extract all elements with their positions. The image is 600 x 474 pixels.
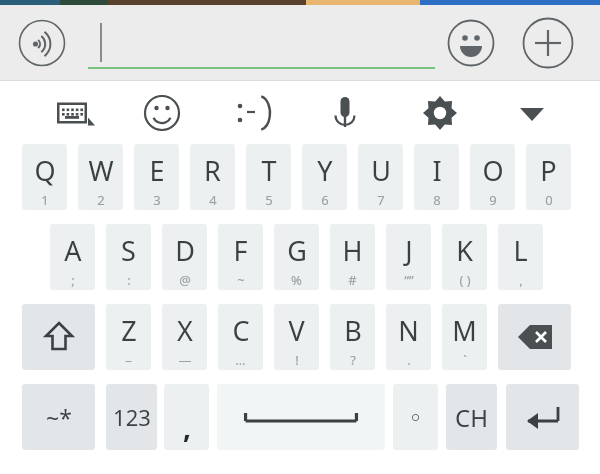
button[interactable]: Voice input xyxy=(18,19,66,67)
staticText: 7 xyxy=(377,191,385,209)
staticText: CH xyxy=(455,401,488,434)
button[interactable]: G xyxy=(274,224,319,290)
button[interactable]: X xyxy=(162,304,207,370)
staticText: E xyxy=(149,152,165,189)
staticText: C xyxy=(232,312,250,349)
staticText: Q xyxy=(34,152,56,189)
staticText: U xyxy=(371,152,391,189)
button[interactable]: I xyxy=(414,144,459,210)
staticText: ◦ xyxy=(409,406,422,429)
staticText: O xyxy=(482,152,504,189)
staticText: F xyxy=(233,232,248,269)
staticText: ; xyxy=(71,271,75,289)
staticText: 4 xyxy=(209,191,217,209)
button[interactable]: Keyboard layout xyxy=(52,93,92,133)
button[interactable]: N xyxy=(386,304,431,370)
staticText: W xyxy=(88,152,114,189)
button[interactable]: S xyxy=(106,224,151,290)
button[interactable]: Shift xyxy=(22,304,95,370)
staticText: ! xyxy=(295,351,299,369)
button[interactable]: CH xyxy=(446,384,497,450)
staticText: , xyxy=(183,408,191,446)
staticText: I xyxy=(432,152,442,189)
button[interactable]: Y xyxy=(302,144,347,210)
button[interactable]: Settings xyxy=(420,93,460,133)
staticText: @ xyxy=(179,271,191,289)
staticText: ? xyxy=(350,351,356,369)
staticText: ~ xyxy=(237,271,245,289)
staticText: B xyxy=(344,312,362,349)
staticText: % xyxy=(291,271,302,289)
button[interactable]: M xyxy=(442,304,487,370)
staticText: R xyxy=(204,152,221,189)
staticText: L xyxy=(513,232,528,269)
staticText: S xyxy=(121,232,136,269)
staticText: X xyxy=(177,312,193,349)
staticText: , xyxy=(519,271,523,289)
button[interactable]: , xyxy=(164,384,209,450)
staticText: G xyxy=(287,232,307,269)
staticText: P xyxy=(540,152,557,189)
staticText: H xyxy=(342,232,363,269)
button[interactable]: Z xyxy=(106,304,151,370)
button[interactable]: P xyxy=(526,144,571,210)
button[interactable]: V xyxy=(274,304,319,370)
staticText: 123 xyxy=(113,402,151,432)
button[interactable]: B xyxy=(330,304,375,370)
button[interactable]: ~* xyxy=(22,384,95,450)
staticText: 0 xyxy=(545,191,553,209)
button[interactable]: Enter xyxy=(506,384,579,450)
button[interactable]: H xyxy=(330,224,375,290)
button[interactable]: W xyxy=(78,144,123,210)
staticText: 1 xyxy=(41,191,49,209)
staticText: Z xyxy=(121,312,137,349)
staticText: # xyxy=(348,271,357,289)
staticText: 9 xyxy=(489,191,497,209)
button[interactable]: Emoji keyboard xyxy=(142,93,182,133)
staticText: “” xyxy=(404,271,414,289)
staticText: – xyxy=(125,351,132,369)
staticText: 2 xyxy=(97,191,105,209)
staticText: ` xyxy=(463,351,467,369)
staticText: 8 xyxy=(433,191,441,209)
button[interactable]: 123 xyxy=(106,384,157,450)
button[interactable]: A xyxy=(50,224,95,290)
staticText: 6 xyxy=(321,191,329,209)
button[interactable]: Add attachment xyxy=(522,17,574,69)
staticText: ( ) xyxy=(459,271,471,289)
staticText: J xyxy=(405,232,413,269)
button[interactable]: More options xyxy=(512,93,552,133)
button[interactable]: Q xyxy=(22,144,67,210)
button[interactable]: J xyxy=(386,224,431,290)
button[interactable]: Text emoticons xyxy=(232,93,272,133)
staticText: 3 xyxy=(153,191,161,209)
staticText: . xyxy=(407,351,411,369)
staticText: — xyxy=(178,351,192,369)
staticText: … xyxy=(235,351,246,369)
button[interactable]: Voice typing xyxy=(325,93,365,133)
staticText: : xyxy=(127,271,131,289)
button[interactable]: T xyxy=(246,144,291,210)
button[interactable]: Space xyxy=(217,384,385,450)
staticText: 5 xyxy=(265,191,273,209)
button[interactable]: K xyxy=(442,224,487,290)
button[interactable]: Backspace xyxy=(498,304,571,370)
button[interactable]: O xyxy=(470,144,515,210)
button[interactable]: R xyxy=(190,144,235,210)
button[interactable]: L xyxy=(498,224,543,290)
staticText: Y xyxy=(317,152,333,189)
staticText: N xyxy=(398,312,419,349)
button[interactable]: U xyxy=(358,144,403,210)
staticText: D xyxy=(175,232,195,269)
button[interactable]: F xyxy=(218,224,263,290)
button[interactable]: C xyxy=(218,304,263,370)
button[interactable]: ◦ xyxy=(393,384,438,450)
button[interactable]: D xyxy=(162,224,207,290)
staticText: T xyxy=(261,152,277,189)
staticText: M xyxy=(452,312,477,349)
staticText: K xyxy=(456,232,473,269)
button[interactable]: Emoji xyxy=(447,19,495,67)
staticText: ~* xyxy=(46,402,72,433)
staticText: A xyxy=(64,232,82,269)
button[interactable]: E xyxy=(134,144,179,210)
